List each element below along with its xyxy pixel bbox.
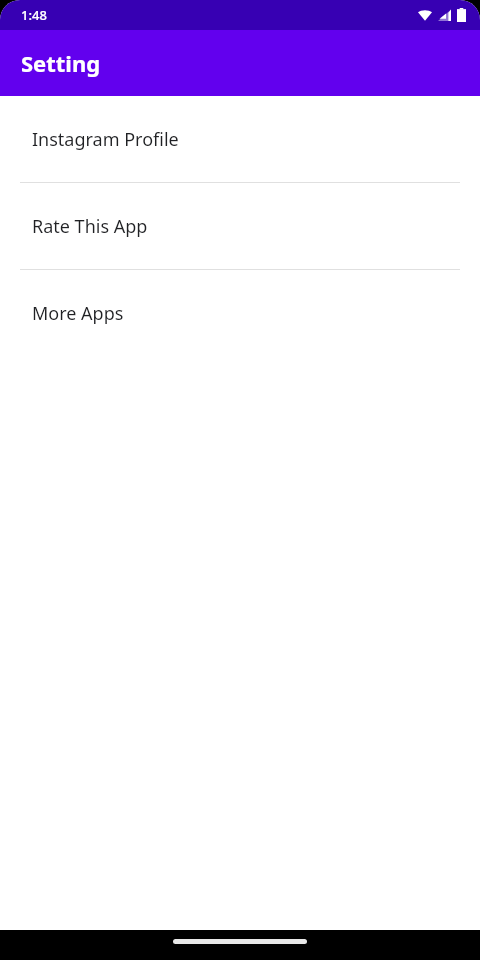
staticText: Rate This App (32, 214, 148, 239)
staticText: Setting (21, 48, 101, 78)
button[interactable]: Rate This App (0, 183, 480, 269)
staticText: More Apps (32, 301, 124, 326)
button[interactable]: Instagram Profile (0, 96, 480, 182)
button[interactable]: More Apps (0, 270, 480, 356)
staticText: Instagram Profile (32, 127, 179, 152)
staticText: 1:48 (21, 6, 47, 24)
